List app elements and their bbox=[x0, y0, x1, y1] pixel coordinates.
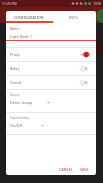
other: Toggle bbox=[80, 66, 89, 71]
staticText: Functionality bbox=[10, 116, 30, 120]
staticText: Relay bbox=[10, 66, 20, 71]
other: Toggle bbox=[80, 80, 89, 85]
staticText: CANCEL bbox=[59, 167, 73, 172]
button[interactable]: Proxy bbox=[6, 48, 96, 61]
button[interactable]: Functionality bbox=[6, 113, 96, 134]
staticText: INFO bbox=[69, 15, 78, 20]
staticText: 11:35 PM bbox=[2, 1, 17, 6]
staticText: Group bbox=[10, 93, 20, 97]
button[interactable]: Relay bbox=[6, 62, 96, 75]
staticText: Proxy bbox=[10, 52, 20, 57]
other: Toggle bbox=[80, 52, 89, 57]
staticText: SAVE bbox=[80, 167, 89, 172]
button[interactable]: Friend bbox=[6, 76, 96, 89]
button[interactable]: Group bbox=[6, 90, 96, 112]
button[interactable]: CANCEL bbox=[57, 165, 75, 174]
other: Add bbox=[96, 9, 103, 23]
staticText: 100% bbox=[93, 2, 102, 6]
button[interactable]: CONFIGURATION bbox=[6, 11, 51, 23]
staticText: Name bbox=[10, 27, 19, 31]
staticText: On/Off bbox=[10, 123, 22, 128]
staticText: Light Node 1 bbox=[10, 34, 33, 39]
button[interactable]: Name bbox=[6, 23, 96, 41]
staticText: CONFIGURATION bbox=[14, 15, 44, 20]
staticText: Friend bbox=[10, 80, 22, 85]
button[interactable]: SAVE bbox=[78, 165, 91, 174]
button[interactable]: INFO bbox=[51, 11, 96, 23]
staticText: Demo Group bbox=[10, 100, 33, 105]
